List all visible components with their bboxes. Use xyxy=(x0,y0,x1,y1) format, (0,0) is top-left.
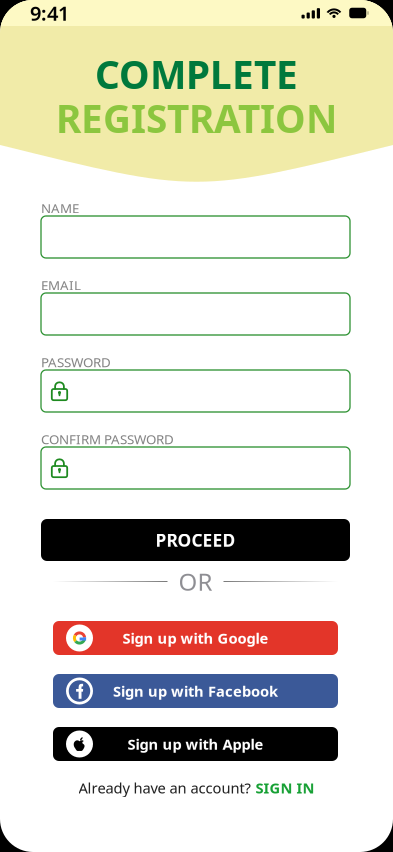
staticText: CONFIRM PASSWORD xyxy=(41,430,174,448)
staticText: 9:41 xyxy=(30,0,69,26)
staticText: Sign up with Facebook xyxy=(113,681,278,701)
staticText: EMAIL xyxy=(41,276,81,294)
staticText: NAME xyxy=(41,199,79,217)
staticText: PROCEED xyxy=(155,528,235,551)
staticText: Sign up with Apple xyxy=(127,734,263,754)
staticText: COMPLETE xyxy=(95,48,298,100)
staticText: SIGN IN xyxy=(255,778,314,797)
staticText: PASSWORD xyxy=(41,353,111,371)
staticText: REGISTRATION xyxy=(56,92,337,144)
button[interactable]: Sign up with Google xyxy=(53,621,338,655)
button[interactable]: Already have an account? xyxy=(78,778,314,797)
staticText: Sign up with Google xyxy=(122,628,268,648)
staticText: OR xyxy=(178,566,212,597)
button[interactable]: Sign up with Facebook xyxy=(53,674,338,708)
button[interactable]: Sign up with Apple xyxy=(53,727,338,761)
staticText: Already have an account? xyxy=(78,778,250,797)
button[interactable]: PROCEED xyxy=(41,519,350,561)
